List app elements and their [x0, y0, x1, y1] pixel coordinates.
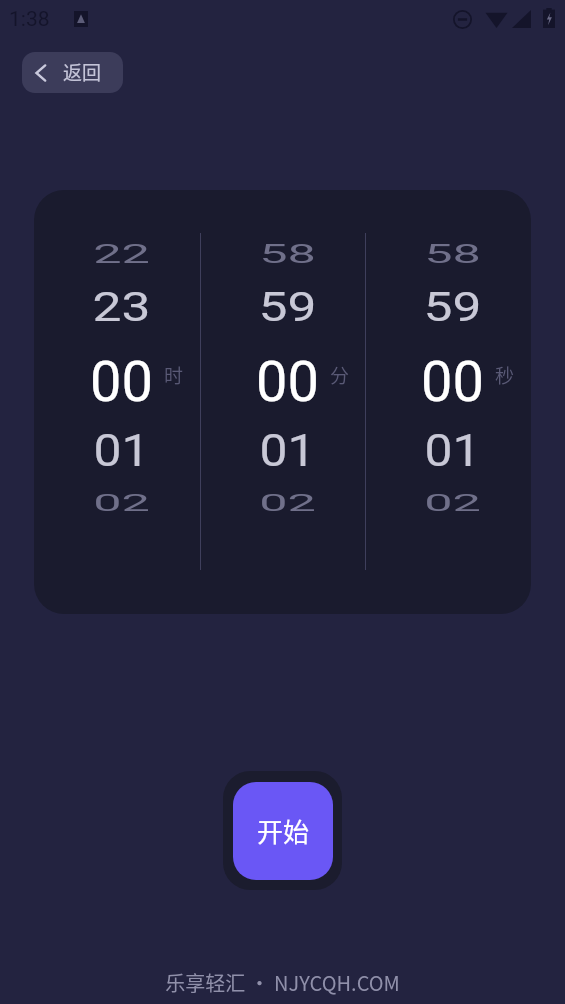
staticText: 01 [93, 425, 150, 477]
staticText: 时 [164, 361, 184, 389]
staticText: 02 [424, 489, 481, 517]
staticText: 乐享轻汇 • NJYCQH.COM [165, 968, 400, 997]
staticText: 00 [421, 349, 484, 415]
staticText: 1:38 [9, 7, 50, 32]
staticText: 58 [259, 239, 316, 269]
staticText: 59 [258, 283, 316, 331]
staticText: 23 [92, 283, 150, 331]
button[interactable]: 开始 [233, 782, 333, 880]
staticText: 22 [93, 239, 150, 269]
staticText: 01 [259, 425, 316, 477]
staticText: 01 [424, 425, 481, 477]
staticText: 58 [424, 239, 481, 269]
staticText: 59 [423, 283, 481, 331]
staticText: 00 [90, 349, 153, 415]
staticText: 00 [256, 349, 319, 415]
button[interactable]: 22 [34, 190, 200, 614]
staticText: 秒 [495, 361, 515, 389]
staticText: 返回 [63, 58, 102, 86]
button[interactable]: 58 [365, 190, 531, 614]
staticText: 02 [259, 489, 316, 517]
staticText: 02 [93, 489, 150, 517]
staticText: 分 [330, 361, 350, 389]
staticText: 开始 [257, 812, 310, 850]
button[interactable]: 58 [200, 190, 366, 614]
button[interactable]: 返回 [22, 52, 123, 93]
